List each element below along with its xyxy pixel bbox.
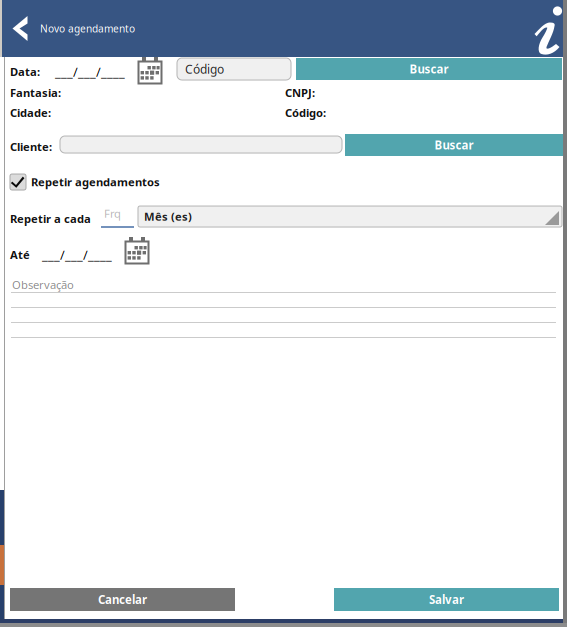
- staticText: Repetir a cada: [10, 211, 91, 226]
- staticText: Cliente:: [10, 139, 52, 154]
- staticText: ___/___/____: [55, 63, 125, 80]
- staticText: Mês (es): [144, 209, 192, 224]
- button[interactable]: Cancelar: [10, 588, 235, 611]
- staticText: Fantasia:: [10, 85, 61, 100]
- button[interactable]: Escolher data final: [123, 237, 151, 266]
- staticText: Cancelar: [98, 592, 147, 607]
- staticText: Código: [185, 61, 224, 77]
- button[interactable]: Escolher data: [136, 57, 164, 86]
- staticText: Data:: [10, 64, 40, 79]
- staticText: Novo agendamento: [40, 22, 135, 35]
- button[interactable]: Mês (es): [138, 206, 562, 227]
- staticText: Observação: [12, 277, 74, 292]
- staticText: Código:: [285, 105, 326, 120]
- staticText: CNPJ:: [285, 85, 315, 100]
- staticText: Frq: [104, 206, 121, 221]
- button[interactable]: Salvar: [334, 588, 559, 611]
- staticText: Cidade:: [10, 105, 51, 120]
- staticText: ___/___/____: [42, 246, 112, 263]
- staticText: Repetir agendamentos: [31, 174, 160, 190]
- button[interactable]: Repetir agendamentos: [10, 174, 160, 190]
- button[interactable]: Informações: [534, 0, 567, 56]
- staticText: Salvar: [429, 592, 464, 607]
- staticText: Buscar: [434, 137, 473, 153]
- button[interactable]: Buscar: [345, 134, 563, 156]
- staticText: Buscar: [409, 61, 448, 77]
- button[interactable]: Novo agendamento: [0, 0, 145, 56]
- staticText: Até: [10, 247, 30, 262]
- button[interactable]: Buscar: [296, 58, 562, 80]
